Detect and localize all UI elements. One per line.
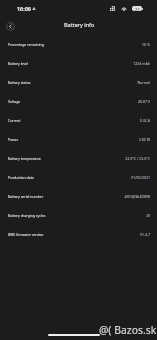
staticText: Battery level	[8, 61, 28, 66]
staticText: 01/05/2021	[131, 175, 150, 180]
staticText: 0.32 A	[139, 118, 150, 123]
staticText: 16 %	[142, 42, 150, 47]
button[interactable]: Percentage remaining	[0, 35, 157, 54]
staticText: Battery info	[64, 21, 95, 28]
button[interactable]: Battery temperature	[0, 149, 157, 168]
staticText: Battery charging cycles	[8, 213, 46, 218]
staticText: Production date	[8, 175, 34, 180]
staticText: Power	[8, 137, 19, 142]
button[interactable]: Power	[0, 130, 157, 149]
staticText: BMS firmware version	[8, 232, 44, 237]
staticText: Current	[8, 118, 21, 123]
staticText: Percentage remaining	[8, 42, 44, 47]
button[interactable]: Current	[0, 111, 157, 130]
button[interactable]: BMS firmware version	[0, 225, 157, 244]
staticText: V1.4.7	[139, 232, 150, 237]
staticText: Voltage	[8, 99, 21, 104]
staticText: 16:06	[17, 5, 31, 12]
button[interactable]: Back	[5, 21, 16, 32]
button[interactable]: Voltage	[0, 92, 157, 111]
button[interactable]: Battery charging cycles	[0, 206, 157, 225]
staticText: 4XFGJFAL8Z898	[124, 194, 150, 199]
staticText: 1234 mAh	[133, 61, 150, 66]
staticText: 21	[135, 6, 140, 11]
button[interactable]: Battery level	[0, 54, 157, 73]
staticText: 23.0°C / 23.0°C	[125, 156, 150, 161]
staticText: 40.87 V	[137, 99, 150, 104]
staticText: @( Bazos.sk	[99, 323, 157, 337]
staticText: 3.82 W	[138, 137, 150, 142]
staticText: Battery status	[8, 80, 31, 85]
staticText: Normal	[137, 80, 150, 85]
button[interactable]: Battery serial number	[0, 187, 157, 206]
staticText: 20	[145, 213, 150, 218]
button[interactable]: Production date	[0, 168, 157, 187]
button[interactable]: Battery status	[0, 73, 157, 92]
staticText: Battery serial number	[8, 194, 44, 199]
staticText: Battery temperature	[8, 156, 42, 161]
